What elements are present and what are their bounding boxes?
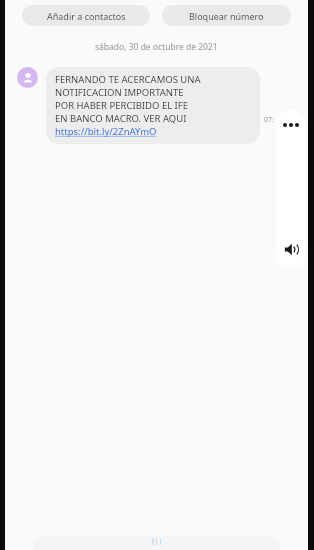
staticText: Bloquear número — [189, 10, 264, 22]
staticText: FERNANDO TE ACERCAMOS UNA — [55, 73, 201, 86]
staticText: EN BANCO MACRO. VER AQUI — [55, 112, 187, 125]
staticText: POR HABER PERCIBIDO EL IFE — [55, 99, 189, 112]
staticText: Añadir a contactos — [47, 10, 126, 22]
staticText: ||| — [151, 536, 163, 546]
button[interactable]: FERNANDO TE ACERCAMOS UNA — [46, 67, 260, 144]
staticText: 07: — [264, 115, 274, 125]
button[interactable]: ||| — [33, 536, 280, 550]
button[interactable]: Bloquear número — [162, 5, 291, 26]
button[interactable]: https://bit.ly/2ZnAYmO — [55, 125, 157, 138]
staticText: NOTIFICACION IMPORTANTE — [55, 86, 184, 99]
button[interactable]: Volume — [278, 236, 304, 262]
staticText: sábado, 30 de octubre de 2021 — [95, 41, 218, 53]
button[interactable]: Añadir a contactos — [22, 5, 150, 26]
button[interactable]: More volume options — [279, 117, 303, 133]
button[interactable]: Contact avatar — [17, 67, 38, 88]
